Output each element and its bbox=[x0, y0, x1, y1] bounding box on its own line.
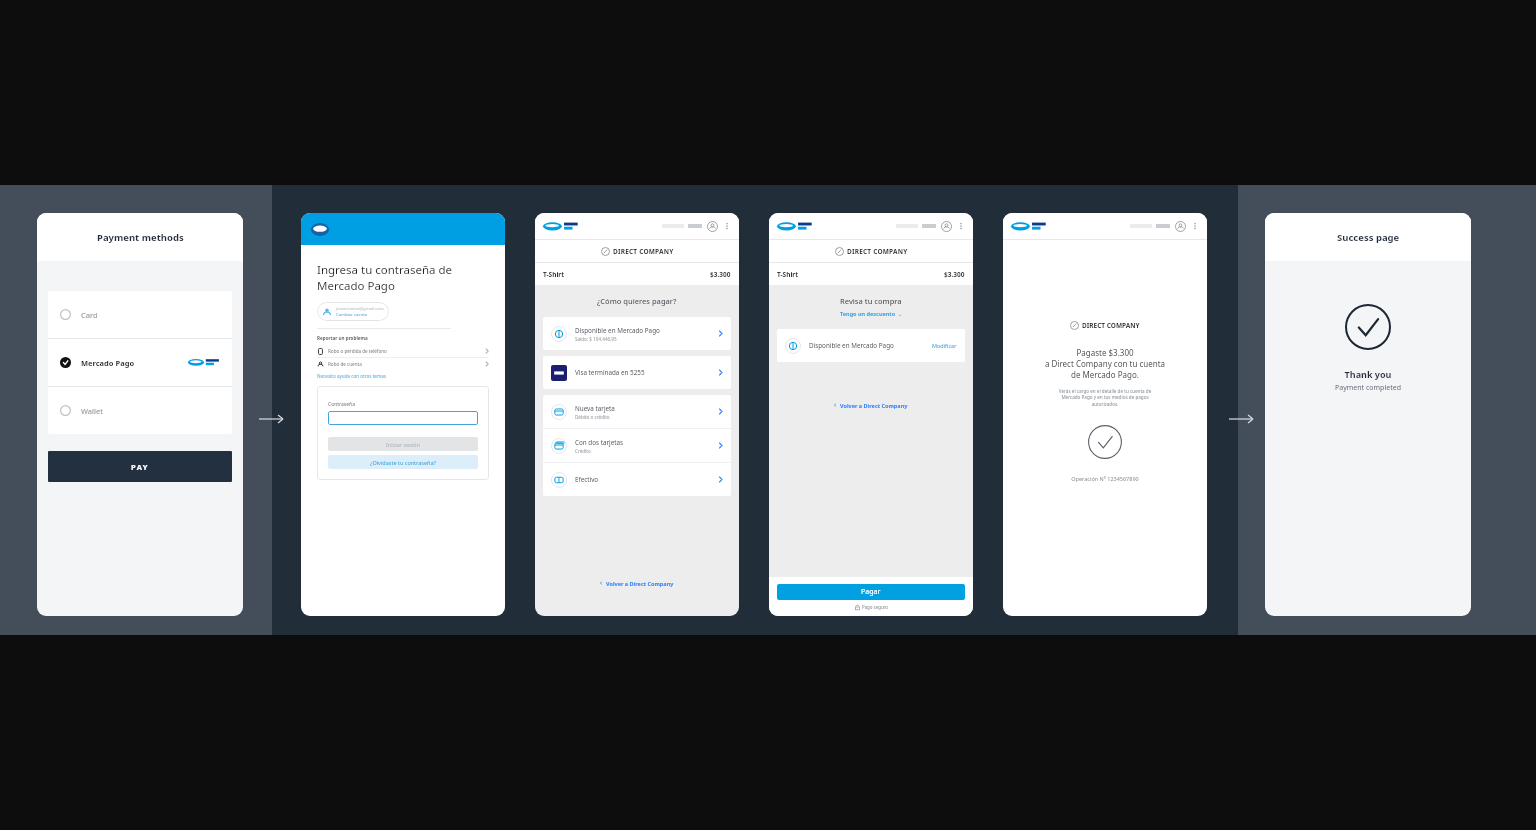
button[interactable]: ¿Olvidaste tu contraseña? bbox=[328, 455, 478, 469]
button[interactable]: Visa terminada en 5255 bbox=[543, 356, 731, 389]
staticText: $3.300 bbox=[944, 270, 965, 279]
button[interactable]: ‹ bbox=[769, 400, 973, 410]
staticText: T-Shirt bbox=[777, 270, 799, 279]
staticText: DIRECT COMPANY bbox=[1082, 321, 1140, 330]
staticText: Wallet bbox=[81, 406, 103, 416]
staticText: ¿Olvidaste tu contraseña? bbox=[370, 459, 436, 466]
staticText: DIRECT COMPANY bbox=[847, 247, 908, 256]
button[interactable]: More options bbox=[723, 222, 731, 230]
button[interactable]: Con dos tarjetas bbox=[543, 429, 731, 462]
button[interactable]: Iniciar sesión bbox=[328, 437, 478, 451]
staticText: Payment methods bbox=[97, 231, 184, 244]
button[interactable]: Mercado Pago bbox=[48, 339, 232, 386]
staticText: Pagar bbox=[861, 587, 881, 597]
staticText: Card bbox=[81, 310, 98, 320]
staticText: Cambiar cuenta bbox=[336, 312, 368, 318]
staticText: Volver a Direct Company bbox=[606, 580, 674, 587]
staticText: Nueva tarjeta bbox=[575, 404, 615, 413]
staticText: Revisa tu compra bbox=[840, 296, 902, 306]
staticText: Saldo: $ 104.446,95 bbox=[575, 336, 617, 342]
staticText: Mercado Pago bbox=[317, 278, 395, 294]
staticText: Efectivo bbox=[575, 475, 599, 484]
button[interactable]: PAY bbox=[48, 451, 232, 482]
staticText: Thank you bbox=[1265, 368, 1471, 380]
staticText: Volver a Direct Company bbox=[840, 402, 908, 409]
staticText: Modificar bbox=[932, 342, 957, 349]
button[interactable]: jeusername@gmail.com bbox=[317, 302, 389, 321]
button[interactable]: Card bbox=[48, 291, 232, 338]
staticText: Ingresa tu contraseña de bbox=[317, 262, 453, 278]
staticText: Iniciar sesión bbox=[386, 441, 421, 448]
button[interactable]: Account bbox=[1175, 221, 1186, 232]
staticText: PAY bbox=[131, 462, 149, 472]
staticText: Verás el cargo en el detalle de tu cuent… bbox=[1025, 388, 1185, 407]
staticText: Reportar un problema bbox=[317, 335, 368, 341]
staticText: DIRECT COMPANY bbox=[613, 247, 674, 256]
button[interactable]: Disponible en Mercado Pago bbox=[543, 317, 731, 350]
staticText: ⌄ bbox=[898, 311, 903, 317]
button[interactable]: More options bbox=[957, 222, 965, 230]
button[interactable]: More options bbox=[1191, 222, 1199, 230]
staticText: Tengo un descuento bbox=[840, 310, 896, 317]
staticText: Pago seguro bbox=[862, 604, 888, 610]
staticText: Visa terminada en 5255 bbox=[575, 368, 645, 377]
button[interactable]: ‹ bbox=[535, 578, 739, 616]
staticText: Operación Nº 1234567890 bbox=[1003, 475, 1207, 482]
staticText: Robo o pérdida de teléfono bbox=[328, 348, 387, 354]
staticText: ¿Cómo quieres pagar? bbox=[597, 296, 677, 306]
button[interactable]: Pagar bbox=[777, 584, 965, 600]
staticText: ‹ bbox=[600, 578, 603, 588]
button[interactable]: Wallet bbox=[48, 387, 232, 434]
staticText: Con dos tarjetas bbox=[575, 438, 624, 447]
staticText: Crédito bbox=[575, 448, 591, 454]
button[interactable]: Disponible en Mercado Pago bbox=[777, 329, 965, 362]
staticText: $3.300 bbox=[710, 270, 731, 279]
staticText: Robo de cuenta bbox=[328, 361, 362, 367]
staticText: ‹ bbox=[834, 400, 837, 410]
staticText: T-Shirt bbox=[543, 270, 565, 279]
button[interactable] bbox=[328, 411, 478, 425]
button[interactable]: Nueva tarjeta bbox=[543, 395, 731, 428]
button[interactable]: Necesito ayuda con otros temas bbox=[317, 373, 387, 379]
staticText: Disponible en Mercado Pago bbox=[809, 341, 894, 350]
staticText: jeusername@gmail.com bbox=[336, 306, 384, 312]
button[interactable]: Robo de cuenta bbox=[317, 358, 489, 370]
button[interactable]: Account bbox=[707, 221, 718, 232]
staticText: Disponible en Mercado Pago bbox=[575, 326, 660, 335]
button[interactable]: Robo o pérdida de teléfono bbox=[317, 345, 489, 357]
staticText: Success page bbox=[1337, 231, 1400, 244]
button[interactable]: Account bbox=[941, 221, 952, 232]
staticText: Contraseña bbox=[328, 401, 355, 408]
staticText: Mercado Pago bbox=[81, 358, 135, 368]
staticText: Débito o crédito bbox=[575, 414, 610, 420]
staticText: Pagaste $3.300 a Direct Company con tu c… bbox=[1003, 347, 1207, 380]
button[interactable]: Efectivo bbox=[543, 463, 731, 496]
button[interactable]: Tengo un descuento bbox=[769, 310, 973, 317]
staticText: Payment completed bbox=[1265, 383, 1471, 393]
